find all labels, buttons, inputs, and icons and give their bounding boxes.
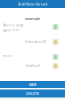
staticText: When to create — [3, 24, 24, 27]
staticText: Saved? YYYY — [3, 29, 20, 32]
staticText: Execute — [3, 54, 13, 57]
staticText: SAVE — [28, 82, 36, 87]
staticText: Technical or UI? — [25, 40, 46, 44]
staticText: Add New Variant — [18, 1, 47, 7]
button[interactable]: Edit qualified — [51, 62, 62, 70]
button[interactable]: Edit technical or UI — [51, 38, 62, 46]
staticText: example — [25, 16, 40, 21]
button[interactable]: SAVE — [0, 81, 65, 88]
button[interactable]: Add when-to-create entry — [51, 24, 62, 32]
staticText: Qualified? — [26, 64, 40, 68]
staticText: DELETE — [26, 91, 39, 96]
button[interactable]: DELETE — [0, 89, 65, 97]
button[interactable]: Add execute step — [51, 51, 62, 59]
